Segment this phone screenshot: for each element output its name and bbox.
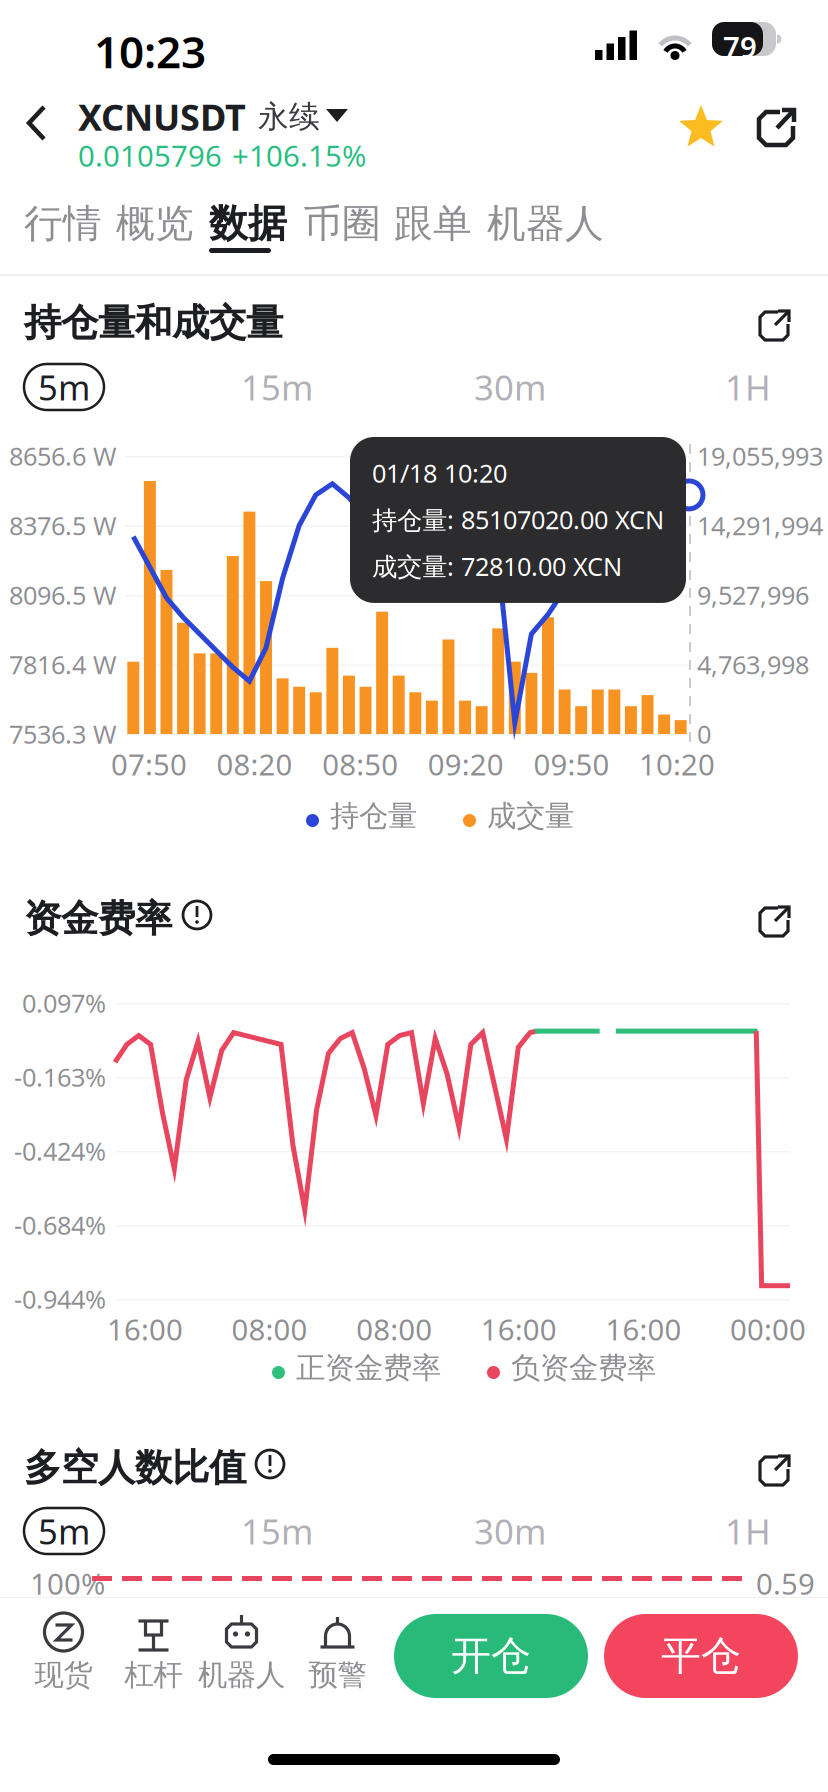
staticText: 5m xyxy=(38,1508,90,1554)
staticText: 08:50 xyxy=(322,744,398,783)
staticText: 正资金费率 xyxy=(296,1350,441,1386)
staticText: 行情 xyxy=(24,200,102,247)
button[interactable]: 15m xyxy=(232,364,322,410)
button[interactable]: Share xyxy=(740,92,812,164)
staticText: -0.944% xyxy=(14,1282,106,1316)
staticText: 1H xyxy=(725,364,771,410)
staticText: 16:00 xyxy=(107,1309,183,1348)
staticText: 持仓量和成交量 xyxy=(24,300,283,346)
staticText: 00:00 xyxy=(730,1309,806,1348)
staticText: 币圈 xyxy=(303,200,381,247)
staticText: 成交量: 72810.00 XCN xyxy=(372,549,622,583)
staticText: 成交量 xyxy=(487,798,574,834)
button[interactable]: Expand chart xyxy=(742,294,806,358)
staticText: 负资金费率 xyxy=(511,1350,656,1386)
staticText: 14,291,994 xyxy=(697,509,823,542)
staticText: 07:50 xyxy=(111,744,187,783)
staticText: 0.097% xyxy=(22,986,106,1020)
staticText: 7816.4 W xyxy=(9,648,117,681)
staticText: 30m xyxy=(474,1508,546,1554)
staticText: 16:00 xyxy=(481,1309,557,1348)
staticText: 机器人 xyxy=(487,200,604,247)
button[interactable]: 行情 xyxy=(10,190,114,276)
button[interactable]: 现货 xyxy=(22,1606,114,1712)
staticText: 0 xyxy=(697,717,711,751)
button[interactable]: 跟单 xyxy=(380,190,484,276)
staticText: 79 xyxy=(723,27,757,66)
button[interactable]: 杠杆 xyxy=(112,1606,204,1712)
button[interactable]: 1H xyxy=(714,1508,782,1554)
staticText: XCNUSDT xyxy=(78,93,246,141)
button[interactable]: 5m xyxy=(24,1508,104,1554)
staticText: 开仓 xyxy=(451,1631,531,1680)
staticText: 15m xyxy=(241,364,313,410)
staticText: 跟单 xyxy=(394,200,472,247)
staticText: 100% xyxy=(30,1564,105,1603)
staticText: 10:23 xyxy=(94,22,206,80)
staticText: -0.684% xyxy=(14,1208,106,1242)
staticText: 8656.6 W xyxy=(9,439,117,473)
staticText: 10:20 xyxy=(639,744,715,783)
staticText: 平仓 xyxy=(661,1631,741,1680)
button[interactable]: 平仓 xyxy=(604,1614,798,1698)
staticText: 永续 xyxy=(258,98,320,136)
staticText: 09:20 xyxy=(428,744,504,783)
staticText: -0.424% xyxy=(14,1134,106,1168)
staticText: 数据 xyxy=(209,200,287,247)
button[interactable]: 30m xyxy=(465,1508,555,1554)
button[interactable]: 开仓 xyxy=(394,1614,588,1698)
staticText: 16:00 xyxy=(605,1309,681,1348)
staticText: 08:00 xyxy=(232,1309,308,1348)
staticText: 30m xyxy=(474,364,546,410)
button[interactable]: Expand chart xyxy=(742,1439,806,1503)
button[interactable]: 1H xyxy=(714,364,782,410)
button[interactable]: 机器人 xyxy=(200,1606,292,1712)
staticText: 持仓量 xyxy=(330,798,417,834)
staticText: 08:00 xyxy=(356,1309,432,1348)
button[interactable]: 15m xyxy=(232,1508,322,1554)
button[interactable]: 5m xyxy=(24,364,104,410)
button[interactable]: 预警 xyxy=(296,1606,388,1712)
staticText: +106.15% xyxy=(232,136,366,175)
button[interactable]: 机器人 xyxy=(473,190,615,276)
staticText: 多空人数比值 xyxy=(24,1445,246,1491)
button[interactable]: 币圈 xyxy=(289,190,393,276)
staticText: 15m xyxy=(241,1508,313,1554)
staticText: 预警 xyxy=(308,1657,366,1693)
staticText: 08:20 xyxy=(217,744,293,783)
button[interactable]: 数据 xyxy=(195,190,299,276)
staticText: 01/18 10:20 xyxy=(372,456,507,490)
button[interactable]: 概览 xyxy=(102,190,206,276)
staticText: 资金费率 xyxy=(24,896,172,942)
staticText: 概览 xyxy=(116,200,194,247)
staticText: 现货 xyxy=(34,1657,92,1693)
staticText: 机器人 xyxy=(198,1657,285,1693)
button[interactable]: Back xyxy=(6,88,72,160)
staticText: 7536.3 W xyxy=(9,717,117,751)
button[interactable]: Favorite xyxy=(664,92,736,164)
staticText: 1H xyxy=(725,1508,771,1554)
staticText: 4,763,998 xyxy=(697,648,809,681)
staticText: 8376.5 W xyxy=(9,509,117,542)
staticText: 0.0105796 xyxy=(78,136,222,175)
staticText: 5m xyxy=(38,364,90,410)
staticText: 19,055,993 xyxy=(697,439,823,473)
staticText: 0.59 xyxy=(756,1564,815,1603)
staticText: 8096.5 W xyxy=(9,578,117,612)
staticText: 杠杆 xyxy=(124,1657,182,1693)
staticText: 9,527,996 xyxy=(697,578,809,612)
button[interactable]: 30m xyxy=(465,364,555,410)
staticText: 持仓量: 85107020.00 XCN xyxy=(372,503,664,536)
staticText: 09:50 xyxy=(533,744,609,783)
staticText: -0.163% xyxy=(14,1060,106,1094)
button[interactable]: Expand chart xyxy=(742,890,806,954)
